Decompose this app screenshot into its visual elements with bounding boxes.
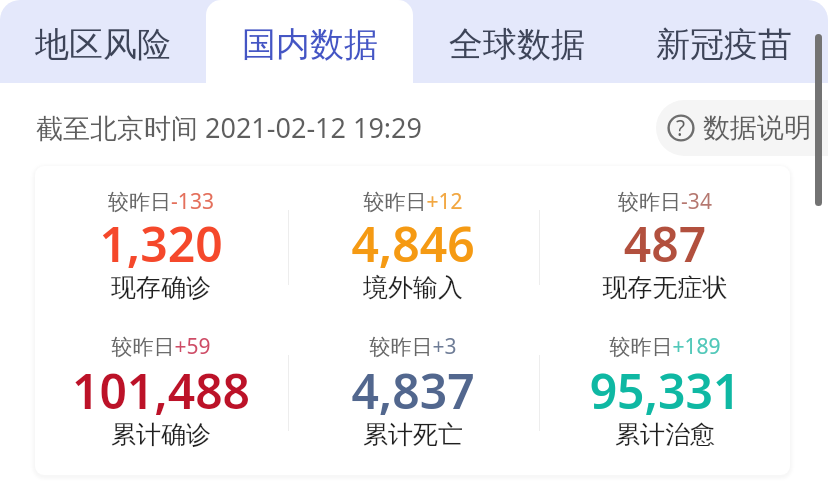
button[interactable]: 较昨日-34 xyxy=(539,187,790,306)
staticText: 截至北京时间 2021-02-12 19:29 xyxy=(36,109,422,146)
staticText: 境外输入 xyxy=(287,272,539,303)
staticText: 较昨日+12 xyxy=(287,187,539,216)
staticText: 较昨日-133 xyxy=(35,187,287,216)
button[interactable]: 较昨日+189 xyxy=(539,332,790,453)
button[interactable]: 地区风险 xyxy=(0,0,206,83)
button[interactable]: 较昨日+59 xyxy=(35,332,287,453)
staticText: 数据说明 xyxy=(703,111,811,145)
staticText: 较昨日-34 xyxy=(539,187,790,216)
staticText: 累计治愈 xyxy=(539,419,790,450)
staticText: 95,331 xyxy=(539,358,790,423)
staticText: 4,837 xyxy=(287,358,539,423)
button[interactable]: 国内数据 xyxy=(206,0,413,83)
staticText: 累计确诊 xyxy=(35,419,287,450)
staticText: 累计死亡 xyxy=(287,419,539,450)
staticText: ? xyxy=(676,114,686,142)
staticText: 较昨日+59 xyxy=(35,332,287,361)
staticText: 4,846 xyxy=(287,211,539,276)
staticText: 较昨日+189 xyxy=(539,332,790,361)
staticText: 101,488 xyxy=(35,358,287,423)
button[interactable]: Data explanation xyxy=(656,100,828,156)
button[interactable]: 新冠疫苗 xyxy=(620,0,828,83)
button[interactable]: 较昨日-133 xyxy=(35,187,287,306)
staticText: 国内数据 xyxy=(242,23,378,66)
staticText: 较昨日+3 xyxy=(287,332,539,361)
staticText: 新冠疫苗 xyxy=(656,23,792,66)
button[interactable]: 较昨日+12 xyxy=(287,187,539,306)
staticText: 1,320 xyxy=(35,211,287,276)
button[interactable]: 全球数据 xyxy=(413,0,620,83)
staticText: 现存确诊 xyxy=(35,272,287,303)
button[interactable]: 较昨日+3 xyxy=(287,332,539,453)
staticText: 全球数据 xyxy=(449,23,585,66)
staticText: 地区风险 xyxy=(35,23,171,66)
staticText: 487 xyxy=(539,211,790,276)
staticText: 现存无症状 xyxy=(539,272,790,303)
other: Data explanation xyxy=(667,114,695,142)
